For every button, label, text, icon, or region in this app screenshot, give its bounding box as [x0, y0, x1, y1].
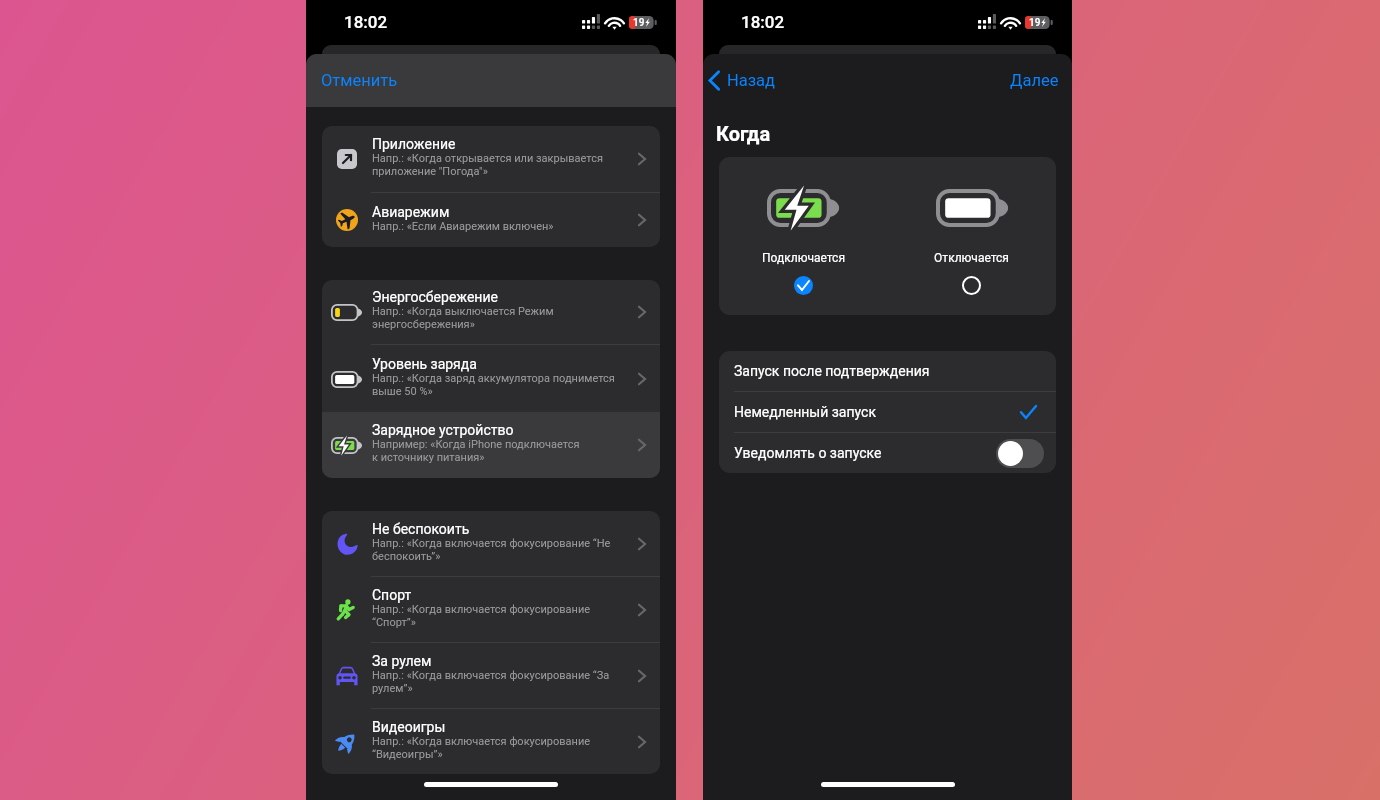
staticText: Когда: [716, 122, 771, 145]
staticText: Напр.: «Когда открывается или закрываетс…: [372, 152, 628, 178]
button[interactable]: Авиарежим: [322, 193, 660, 247]
staticText: Напр.: «Когда включается фокусирование “…: [372, 669, 628, 695]
button[interactable]: Запуск после подтверждения: [719, 351, 1056, 391]
staticText: 18:02: [344, 12, 388, 32]
button[interactable]: Видеоигры: [322, 709, 660, 774]
staticText: Напр.: «Когда включается фокусирование “…: [372, 537, 628, 563]
button[interactable]: Не беспокоить: [322, 511, 660, 576]
staticText: Авиарежим: [372, 204, 450, 220]
staticText: 19: [1029, 17, 1041, 29]
staticText: Видеоигры: [372, 719, 446, 735]
button[interactable]: Назад: [703, 65, 784, 96]
button[interactable]: Зарядное устройство: [322, 412, 660, 478]
staticText: Напр.: «Когда выключается Режим энергосб…: [372, 305, 628, 331]
button[interactable]: Уведомлять о запуске: [996, 439, 1044, 468]
staticText: Спорт: [372, 587, 412, 603]
button[interactable]: Уведомлять о запуске: [719, 433, 1056, 473]
button[interactable]: Спорт: [322, 577, 660, 642]
staticText: 18:02: [741, 12, 785, 32]
staticText: Далее: [1010, 71, 1059, 90]
button[interactable]: Приложение: [322, 126, 660, 192]
staticText: Немедленный запуск: [734, 404, 876, 420]
staticText: Уровень заряда: [372, 356, 477, 372]
button[interactable]: Отменить: [306, 54, 676, 107]
staticText: Отключается: [934, 251, 1009, 265]
staticText: Запуск после подтверждения: [734, 363, 930, 379]
button[interactable]: За рулем: [322, 643, 660, 708]
staticText: Энергосбережение: [372, 289, 498, 305]
staticText: Назад: [727, 71, 776, 90]
staticText: 19: [633, 17, 645, 29]
button[interactable]: Уровень заряда: [322, 345, 660, 412]
button[interactable]: Немедленный запуск: [719, 392, 1056, 432]
staticText: Подключается: [762, 251, 845, 265]
staticText: Не беспокоить: [372, 521, 470, 537]
staticText: Зарядное устройство: [372, 422, 514, 438]
staticText: Напр.: «Когда включается фокусирование “…: [372, 603, 628, 629]
button[interactable]: Далее: [1002, 65, 1072, 96]
button[interactable]: Отключается: [887, 157, 1056, 315]
staticText: Напр.: «Когда включается фокусирование “…: [372, 735, 628, 761]
button[interactable]: Подключается: [719, 157, 887, 315]
button[interactable]: Энергосбережение: [322, 280, 660, 344]
staticText: За рулем: [372, 653, 432, 669]
staticText: Отменить: [321, 71, 398, 90]
staticText: Напр.: «Если Авиарежим включен»: [372, 220, 554, 233]
staticText: Уведомлять о запуске: [734, 445, 882, 461]
staticText: Приложение: [372, 136, 456, 152]
staticText: Например: «Когда iPhone подключается к и…: [372, 438, 628, 464]
staticText: Напр.: «Когда заряд аккумулятора подниме…: [372, 372, 628, 398]
